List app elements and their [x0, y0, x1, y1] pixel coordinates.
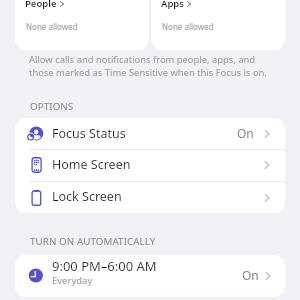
staticText: None allowed	[26, 21, 78, 32]
staticText: Lock Screen	[52, 188, 122, 205]
button[interactable]: Lock Screen	[15, 181, 285, 213]
staticText: OPTIONS	[30, 100, 74, 113]
staticText: Home Screen	[52, 156, 131, 173]
button[interactable]: Home Screen	[15, 150, 285, 182]
staticText: None allowed	[162, 21, 214, 32]
button[interactable]: People	[15, 0, 149, 50]
staticText: 9:00 PM–6:00 AM	[52, 257, 157, 275]
button[interactable]: 9:00 PM–6:00 AM	[15, 255, 285, 297]
staticText: Everyday	[52, 274, 93, 287]
staticText: On	[242, 267, 259, 283]
staticText: Focus Status	[52, 125, 126, 142]
staticText: Apps	[161, 0, 184, 10]
other: Home Screen	[28, 157, 44, 173]
other: Focus Status	[28, 126, 44, 142]
staticText: On	[237, 125, 254, 141]
staticText: TURN ON AUTOMATICALLY	[30, 235, 156, 248]
staticText: People	[25, 0, 57, 10]
button[interactable]: Focus Status	[15, 118, 285, 150]
button[interactable]: Apps	[151, 0, 285, 50]
staticText: Allow calls and notifications from peopl…	[29, 53, 269, 79]
other: Lock Screen	[28, 190, 44, 206]
